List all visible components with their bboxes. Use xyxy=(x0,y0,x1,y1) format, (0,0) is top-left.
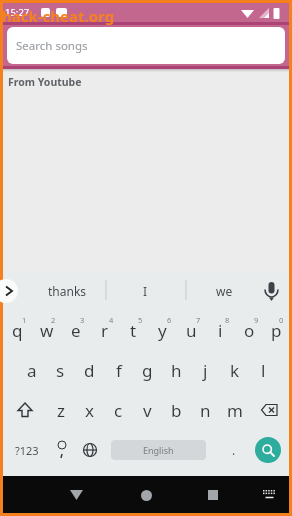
staticText: 2 xyxy=(51,315,56,325)
button[interactable]: n xyxy=(191,390,220,430)
staticText: 5 xyxy=(138,315,143,325)
button[interactable]: o xyxy=(235,310,264,350)
button[interactable]: j xyxy=(191,350,220,390)
staticText: u xyxy=(186,319,197,342)
staticText: w xyxy=(40,319,54,342)
button[interactable]: x xyxy=(75,390,104,430)
staticText: e xyxy=(71,319,81,342)
button[interactable] xyxy=(53,435,71,465)
button[interactable]: g xyxy=(133,350,162,390)
button[interactable]: t xyxy=(119,310,148,350)
button[interactable]: f xyxy=(104,350,133,390)
staticText: z xyxy=(57,399,65,422)
button[interactable]: w xyxy=(32,310,61,350)
button[interactable]: u xyxy=(177,310,206,350)
staticText: 9 xyxy=(254,315,259,325)
button[interactable]: thanks xyxy=(48,283,87,299)
button[interactable]: ?123 xyxy=(11,435,43,465)
staticText: v xyxy=(143,399,152,422)
button[interactable]: s xyxy=(46,350,75,390)
staticText: k xyxy=(230,359,240,382)
staticText: h xyxy=(171,359,182,382)
staticText: ?123 xyxy=(15,443,39,458)
button[interactable]: i xyxy=(206,310,235,350)
button[interactable]: l xyxy=(249,350,278,390)
button[interactable]: I xyxy=(143,283,148,299)
button[interactable]: q xyxy=(3,310,32,350)
staticText: English xyxy=(143,444,174,456)
button[interactable]: . xyxy=(225,435,243,465)
button[interactable]: c xyxy=(104,390,133,430)
button[interactable]: v xyxy=(133,390,162,430)
staticText: q xyxy=(12,319,23,342)
staticText: 15:27 xyxy=(5,6,30,19)
button[interactable]: m xyxy=(220,390,249,430)
staticText: thanks xyxy=(48,283,87,299)
staticText: hack-cheat.org xyxy=(2,6,115,26)
button[interactable]: Search songs xyxy=(7,27,285,64)
button[interactable] xyxy=(0,279,18,303)
staticText: j xyxy=(203,359,208,382)
staticText: a xyxy=(27,359,37,382)
staticText: 1 xyxy=(22,315,27,325)
staticText: l xyxy=(261,359,266,382)
button[interactable] xyxy=(79,435,101,465)
staticText: i xyxy=(218,319,223,342)
button[interactable]: k xyxy=(220,350,249,390)
staticText: m xyxy=(227,399,243,422)
staticText: 4 xyxy=(109,315,114,325)
staticText: p xyxy=(271,319,282,342)
staticText: b xyxy=(171,399,182,422)
staticText: r xyxy=(101,319,109,342)
button[interactable] xyxy=(255,437,281,463)
button[interactable]: y xyxy=(148,310,177,350)
button[interactable]: English xyxy=(111,440,206,460)
staticText: x xyxy=(85,399,94,422)
button[interactable]: d xyxy=(75,350,104,390)
staticText: f xyxy=(116,359,122,382)
button[interactable]: p xyxy=(264,310,289,350)
staticText: 0 xyxy=(279,315,284,325)
button[interactable] xyxy=(256,482,282,508)
staticText: Search songs xyxy=(16,38,88,54)
button[interactable]: we xyxy=(216,283,233,299)
button[interactable]: e xyxy=(61,310,90,350)
staticText: we xyxy=(216,283,233,299)
staticText: y xyxy=(158,319,167,342)
button[interactable] xyxy=(63,482,89,508)
staticText: . xyxy=(232,442,236,458)
button[interactable] xyxy=(133,482,159,508)
staticText: I xyxy=(143,283,148,299)
staticText: c xyxy=(114,399,123,422)
staticText: 6 xyxy=(167,315,172,325)
button[interactable]: a xyxy=(17,350,46,390)
button[interactable]: h xyxy=(162,350,191,390)
button[interactable] xyxy=(249,390,289,430)
staticText: From Youtube xyxy=(8,75,82,89)
button[interactable] xyxy=(200,482,226,508)
button[interactable]: b xyxy=(162,390,191,430)
staticText: s xyxy=(56,359,65,382)
staticText: 3 xyxy=(80,315,85,325)
button[interactable]: r xyxy=(90,310,119,350)
button[interactable] xyxy=(260,280,282,302)
staticText: o xyxy=(244,319,255,342)
staticText: g xyxy=(142,359,153,382)
button[interactable] xyxy=(3,390,46,430)
staticText: d xyxy=(84,359,95,382)
staticText: 8 xyxy=(225,315,230,325)
staticText: n xyxy=(200,399,211,422)
staticText: 7 xyxy=(196,315,201,325)
staticText: t xyxy=(130,319,137,342)
button[interactable]: z xyxy=(46,390,75,430)
